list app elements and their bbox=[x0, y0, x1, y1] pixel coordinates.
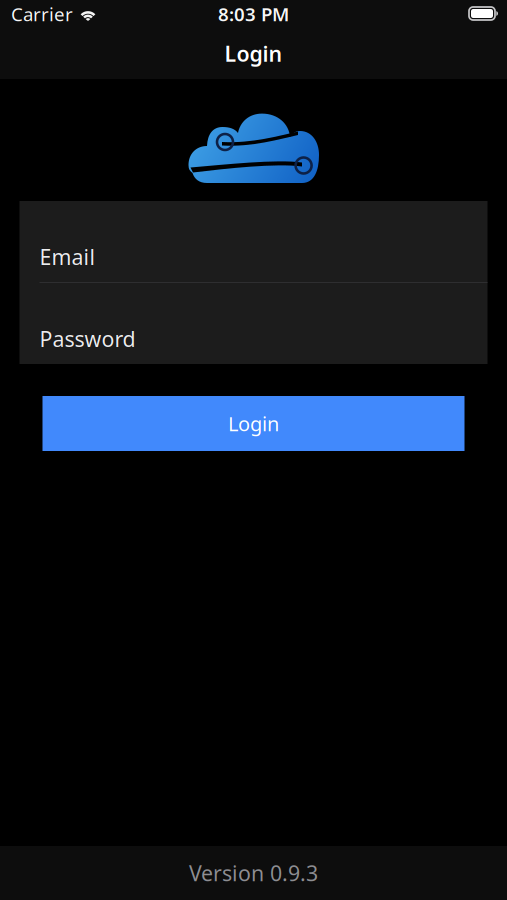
staticText: Version 0.9.3 bbox=[189, 859, 318, 887]
staticText: Login bbox=[228, 410, 279, 437]
staticText: Carrier bbox=[11, 2, 73, 26]
staticText: Password bbox=[39, 325, 135, 353]
staticText: 8:03 PM bbox=[218, 2, 289, 26]
button[interactable]: Email bbox=[19, 201, 487, 282]
button[interactable]: Password bbox=[19, 283, 487, 364]
staticText: Login bbox=[224, 39, 282, 68]
staticText: Email bbox=[39, 243, 95, 271]
button[interactable]: Login bbox=[42, 396, 464, 451]
